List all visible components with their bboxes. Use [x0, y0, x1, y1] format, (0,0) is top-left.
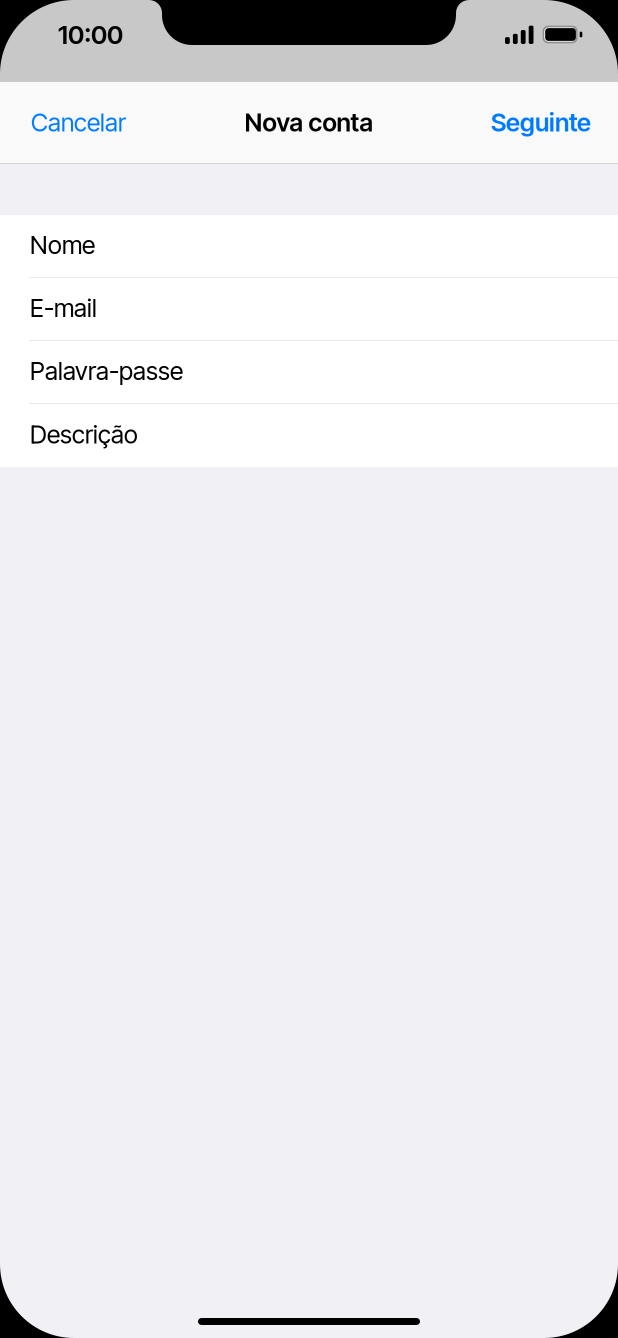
button[interactable]: Palavra-passe — [0, 341, 618, 404]
staticText: Nome — [30, 230, 95, 260]
staticText: Descrição — [30, 419, 138, 449]
button[interactable]: E-mail — [0, 278, 618, 341]
staticText: Nova conta — [244, 107, 373, 138]
button[interactable]: Descrição — [0, 404, 618, 467]
staticText: E-mail — [30, 293, 97, 323]
button[interactable]: Cancelar — [27, 96, 130, 149]
staticText: 10:00 — [58, 19, 123, 50]
button[interactable]: Seguinte — [487, 96, 595, 150]
staticText: Palavra-passe — [30, 356, 183, 386]
staticText: Seguinte — [491, 107, 591, 138]
staticText: Cancelar — [31, 107, 126, 137]
button[interactable]: Nome — [0, 215, 618, 278]
